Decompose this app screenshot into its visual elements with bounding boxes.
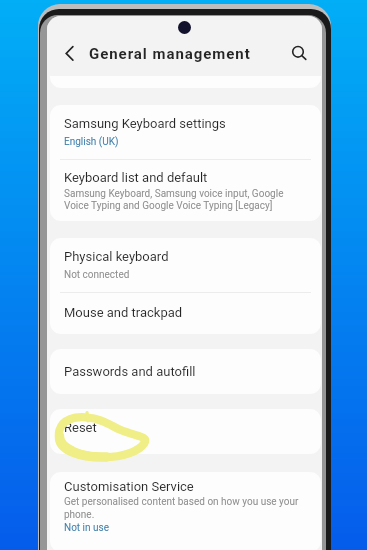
staticText: Keyboard list and default xyxy=(64,170,208,185)
button[interactable]: Customisation Service xyxy=(50,472,321,550)
button[interactable]: Back xyxy=(55,39,83,67)
staticText: Not connected xyxy=(64,269,130,281)
staticText: Not in use xyxy=(64,522,109,534)
staticText: phone. xyxy=(64,509,95,521)
button[interactable]: Physical keyboard xyxy=(50,238,321,292)
staticText: Samsung Keyboard, Samsung voice input, G… xyxy=(64,188,284,200)
button[interactable]: Reset xyxy=(50,409,321,454)
staticText: English (UK) xyxy=(64,136,119,148)
staticText: Get personalised content based on how yo… xyxy=(64,496,299,508)
staticText: General management xyxy=(89,45,251,63)
button[interactable]: Mouse and trackpad xyxy=(50,293,321,334)
button[interactable]: Search xyxy=(285,39,313,67)
button[interactable]: Samsung Keyboard settings xyxy=(50,105,321,159)
button[interactable]: Passwords and autofill xyxy=(50,349,321,394)
staticText: Voice Typing and Google Voice Typing [Le… xyxy=(64,200,273,212)
button[interactable]: Keyboard list and default xyxy=(50,160,321,221)
staticText: Customisation Service xyxy=(64,479,194,494)
staticText: Passwords and autofill xyxy=(64,364,196,379)
staticText: Physical keyboard xyxy=(64,249,169,264)
staticText: Samsung Keyboard settings xyxy=(64,116,226,131)
staticText: Mouse and trackpad xyxy=(64,305,183,320)
staticText: Reset xyxy=(64,420,97,435)
